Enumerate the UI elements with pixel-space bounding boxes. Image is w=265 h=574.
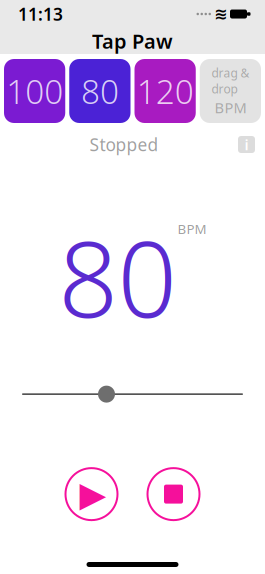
- staticText: BPM: [177, 220, 206, 238]
- staticText: i: [244, 135, 248, 154]
- button[interactable]: drag & drop: [200, 59, 261, 123]
- staticText: 80: [81, 69, 119, 113]
- staticText: Stopped: [89, 133, 158, 156]
- staticText: 120: [137, 69, 194, 113]
- button[interactable]: Stop: [145, 466, 201, 522]
- staticText: 11:13: [18, 2, 63, 25]
- staticText: Tap Paw: [92, 28, 173, 54]
- button[interactable]: Info: [238, 136, 255, 153]
- staticText: drag & drop: [211, 65, 249, 97]
- button[interactable]: Play: [63, 466, 119, 522]
- staticText: 80: [58, 208, 176, 346]
- button[interactable]: 80: [69, 59, 130, 123]
- staticText: BPM: [214, 98, 246, 117]
- button[interactable]: 120: [134, 59, 196, 123]
- button[interactable]: 100: [4, 59, 65, 123]
- staticText: ▶: [79, 474, 106, 514]
- staticText: ≋: [214, 5, 227, 23]
- staticText: 100: [6, 69, 63, 113]
